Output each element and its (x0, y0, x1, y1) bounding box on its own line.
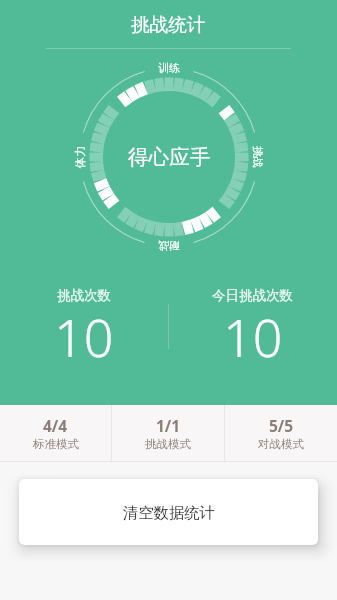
staticText: 今日挑战次数 (212, 287, 293, 304)
button[interactable]: 4/4 (0, 405, 111, 461)
staticText: 训练 (158, 61, 180, 75)
staticText: 耐战 (158, 239, 180, 253)
staticText: 得心应手 (128, 144, 211, 170)
button[interactable]: 今日挑战次数 (168, 287, 337, 375)
staticText: 5/5 (269, 415, 294, 436)
staticText: 挑战次数 (57, 287, 111, 304)
staticText: 10 (223, 301, 283, 372)
staticText: 挑战模式 (145, 437, 191, 451)
button[interactable]: 1/1 (112, 405, 224, 461)
button[interactable]: 挑战次数 (0, 287, 168, 375)
staticText: 对战模式 (258, 437, 304, 451)
staticText: 清空数据统计 (123, 503, 215, 522)
button[interactable]: 清空数据统计 (19, 479, 318, 545)
staticText: 体力 (73, 146, 87, 168)
staticText: 挑战 (251, 146, 265, 168)
staticText: 挑战统计 (131, 13, 206, 36)
staticText: 1/1 (156, 415, 181, 436)
staticText: 10 (54, 301, 114, 372)
staticText: 4/4 (43, 415, 68, 436)
staticText: 标准模式 (33, 437, 79, 451)
button[interactable]: 5/5 (225, 405, 337, 461)
